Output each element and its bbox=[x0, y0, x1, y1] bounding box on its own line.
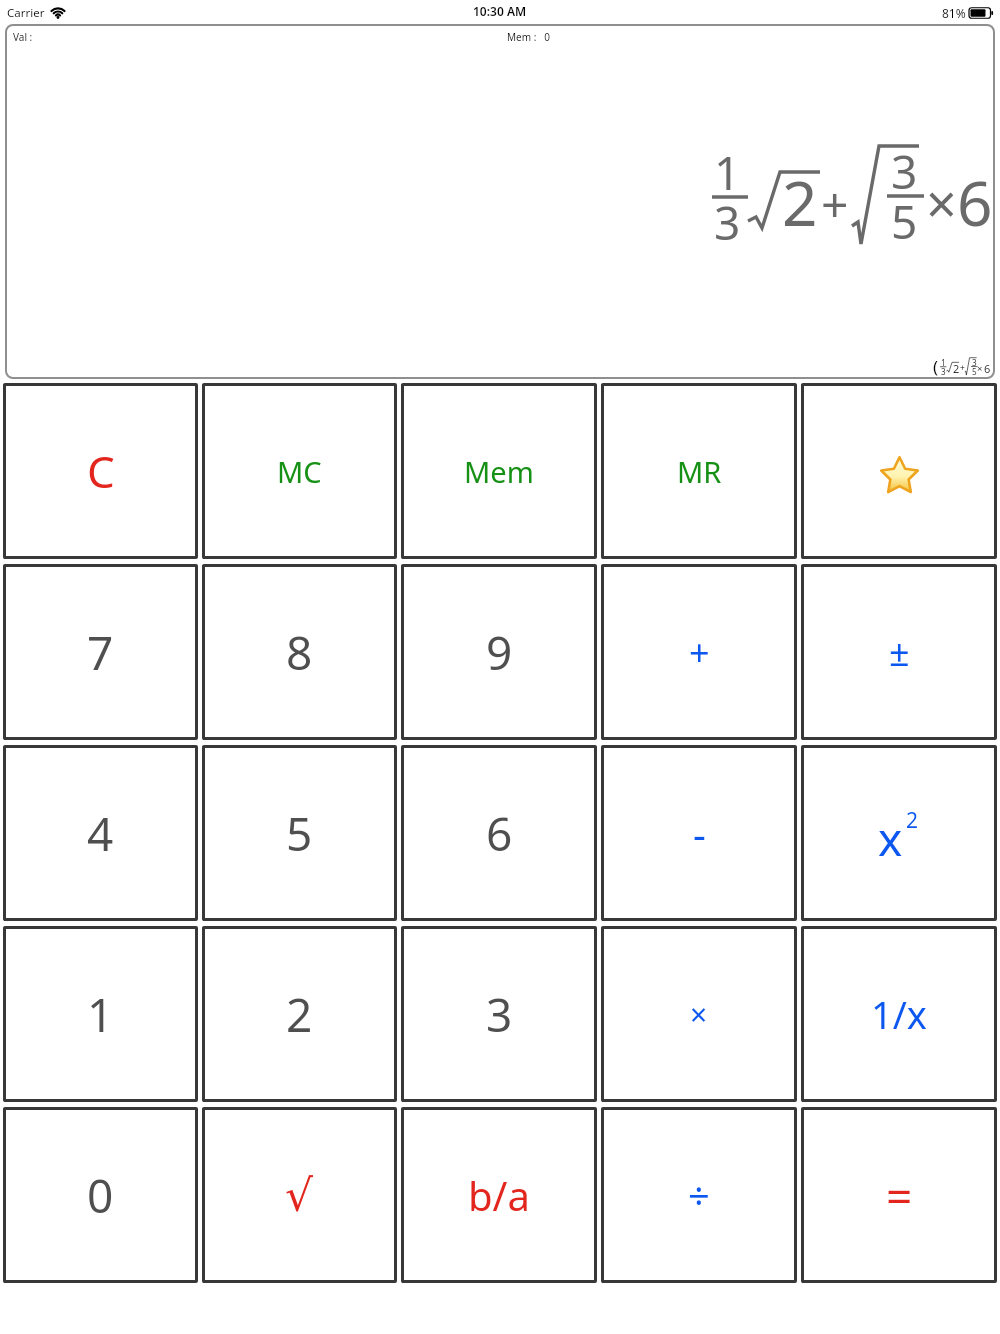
staticText: b/a bbox=[468, 1168, 530, 1222]
staticText: MR bbox=[677, 452, 722, 491]
staticText: 9 bbox=[486, 621, 513, 684]
staticText: x bbox=[878, 807, 903, 870]
staticText: 3 bbox=[972, 357, 977, 368]
staticText: 6 bbox=[984, 361, 991, 376]
staticText: √ bbox=[285, 1170, 314, 1221]
staticText: ( bbox=[933, 355, 939, 378]
staticText: Carrier bbox=[7, 5, 45, 21]
button[interactable]: C bbox=[3, 383, 198, 559]
staticText: + bbox=[821, 171, 849, 236]
button[interactable]: MC bbox=[202, 383, 397, 559]
button[interactable] bbox=[801, 383, 997, 559]
staticText: 1 bbox=[714, 141, 741, 204]
staticText: 2 bbox=[906, 806, 919, 835]
staticText: 5 bbox=[891, 190, 918, 253]
button[interactable]: - bbox=[601, 745, 797, 921]
button[interactable]: 1/x bbox=[801, 926, 997, 1102]
button[interactable]: 0 bbox=[3, 1107, 198, 1283]
staticText: Val : bbox=[13, 30, 33, 44]
staticText: C bbox=[87, 441, 115, 501]
staticText: 2 bbox=[953, 361, 960, 376]
staticText: 1 bbox=[87, 983, 114, 1046]
staticText: 5 bbox=[286, 802, 313, 865]
button[interactable]: 1 bbox=[3, 926, 198, 1102]
staticText: 6 bbox=[957, 160, 993, 244]
staticText: Mem bbox=[464, 452, 534, 491]
staticText: Mem : 0 bbox=[507, 30, 550, 44]
staticText: 3 bbox=[941, 366, 946, 377]
staticText: 3 bbox=[486, 983, 513, 1046]
staticText: 10:30 AM bbox=[473, 3, 527, 19]
staticText: × bbox=[977, 362, 983, 375]
button[interactable]: b/a bbox=[401, 1107, 597, 1283]
button[interactable]: 6 bbox=[401, 745, 597, 921]
staticText: 3 bbox=[714, 191, 741, 254]
staticText: = bbox=[886, 1164, 913, 1227]
staticText: 2 bbox=[286, 983, 313, 1046]
staticText: 2 bbox=[782, 160, 818, 244]
button[interactable]: MR bbox=[601, 383, 797, 559]
button[interactable]: Mem bbox=[401, 383, 597, 559]
staticText: 1 bbox=[941, 357, 946, 368]
button[interactable]: 5 bbox=[202, 745, 397, 921]
staticText: 4 bbox=[87, 802, 114, 865]
button[interactable]: × bbox=[601, 926, 797, 1102]
staticText: 81% bbox=[942, 5, 966, 21]
button[interactable]: ÷ bbox=[601, 1107, 797, 1283]
button[interactable]: x bbox=[801, 745, 997, 921]
button[interactable]: = bbox=[801, 1107, 997, 1283]
staticText: - bbox=[693, 806, 706, 860]
staticText: MC bbox=[277, 452, 322, 491]
staticText: ± bbox=[889, 628, 910, 677]
button[interactable]: ± bbox=[801, 564, 997, 740]
staticText: + bbox=[960, 362, 965, 374]
button[interactable]: 3 bbox=[401, 926, 597, 1102]
staticText: 6 bbox=[486, 802, 513, 865]
staticText: ÷ bbox=[688, 1169, 710, 1221]
button[interactable]: + bbox=[601, 564, 797, 740]
staticText: + bbox=[689, 628, 710, 677]
staticText: 8 bbox=[286, 621, 313, 684]
staticText: 0 bbox=[87, 1164, 114, 1227]
staticText: 1/x bbox=[871, 988, 927, 1040]
staticText: 5 bbox=[972, 366, 977, 377]
button[interactable]: 4 bbox=[3, 745, 198, 921]
button[interactable]: 7 bbox=[3, 564, 198, 740]
button[interactable]: √ bbox=[202, 1107, 397, 1283]
button[interactable]: 9 bbox=[401, 564, 597, 740]
staticText: × bbox=[690, 994, 708, 1035]
button[interactable]: 2 bbox=[202, 926, 397, 1102]
staticText: 3 bbox=[891, 140, 918, 203]
staticText: × bbox=[926, 166, 957, 240]
button[interactable]: Val : bbox=[5, 24, 995, 379]
staticText: 7 bbox=[87, 621, 114, 684]
button[interactable]: 8 bbox=[202, 564, 397, 740]
